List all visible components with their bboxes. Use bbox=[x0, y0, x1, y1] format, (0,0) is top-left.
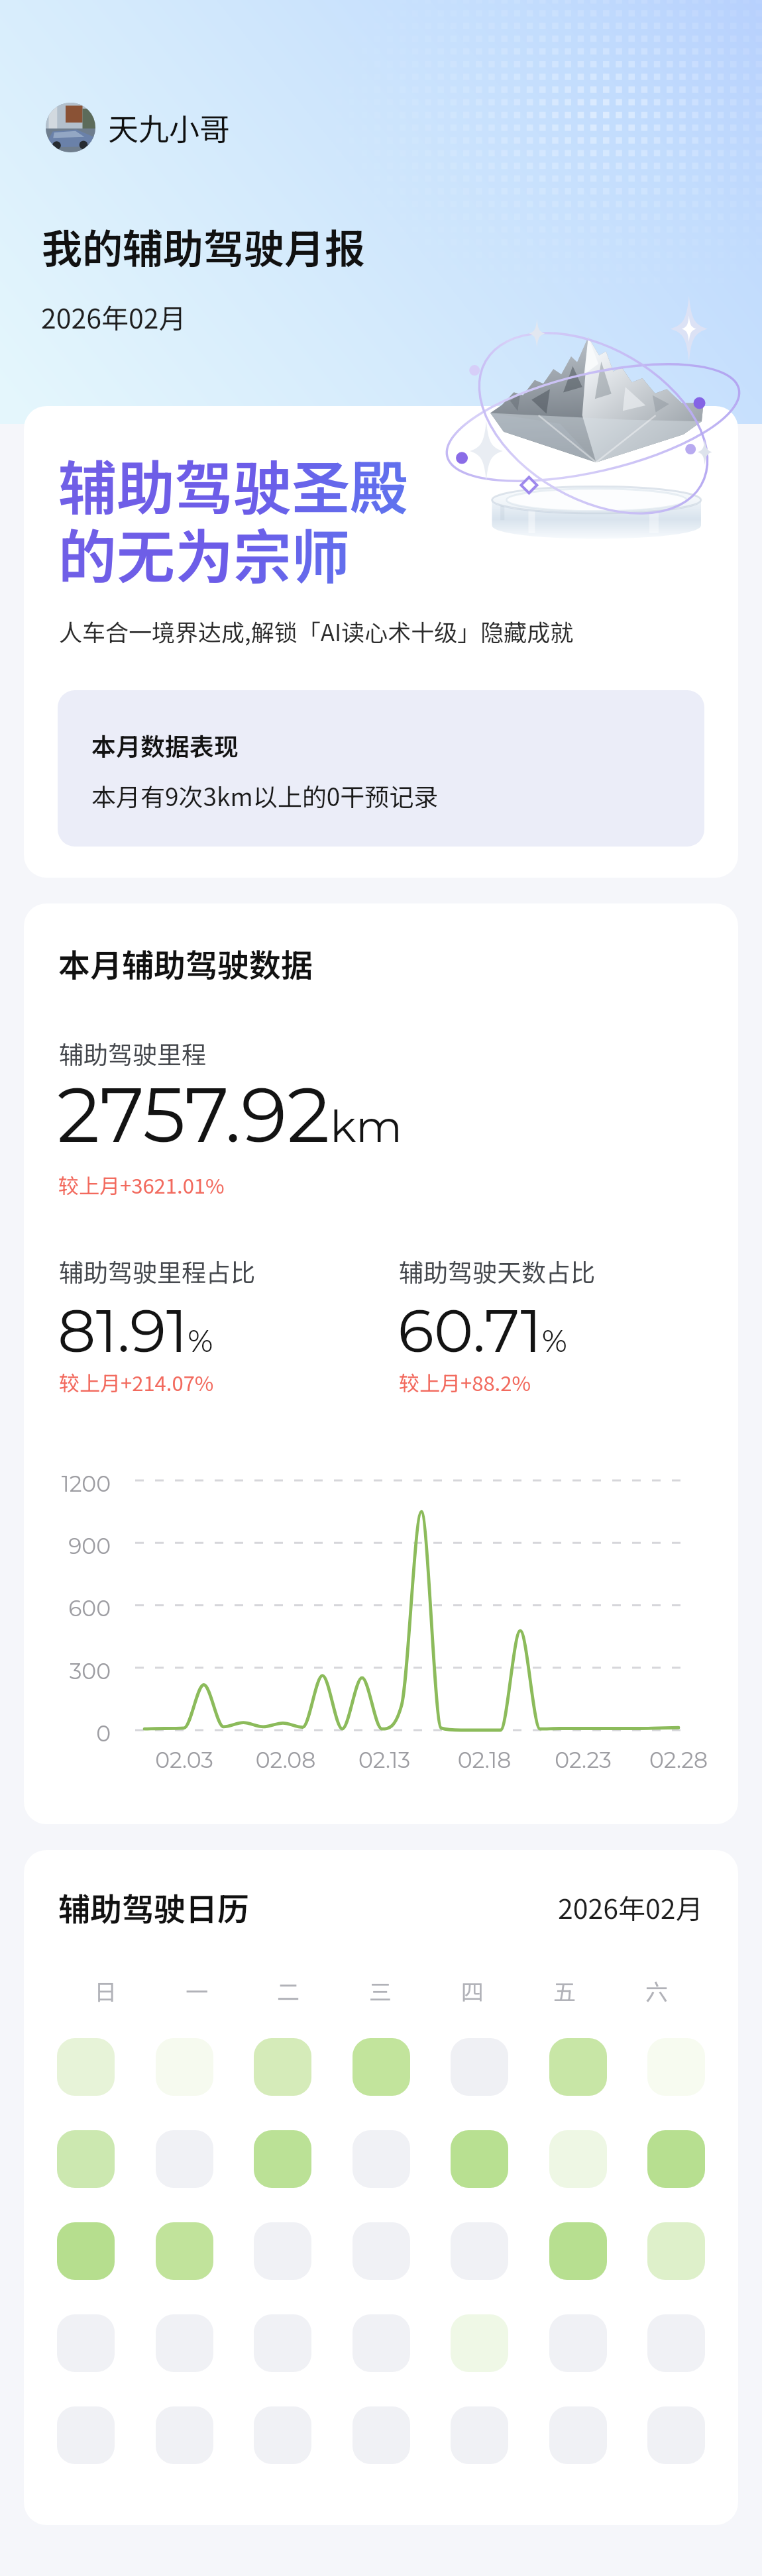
staticText: 辅助驾驶圣殿 的无为宗师 bbox=[58, 442, 409, 595]
button[interactable] bbox=[647, 2038, 705, 2096]
staticText: 本月有9次3km以上的0干预记录 bbox=[91, 778, 439, 813]
button[interactable] bbox=[549, 2130, 607, 2188]
staticText: 五 bbox=[553, 1975, 576, 2007]
staticText: 人车合一境界达成,解锁「AI读心术十级」隐藏成就 bbox=[59, 614, 574, 648]
staticText: 辅助驾驶里程占比 bbox=[59, 1253, 255, 1289]
button[interactable] bbox=[549, 2222, 607, 2280]
staticText: 四 bbox=[461, 1975, 484, 2007]
staticText: 我的辅助驾驶月报 bbox=[42, 217, 366, 275]
button[interactable] bbox=[156, 2038, 213, 2096]
staticText: 02.03 bbox=[131, 1747, 237, 1773]
staticText: 02.13 bbox=[331, 1747, 437, 1773]
staticText: 81.91% bbox=[58, 1294, 213, 1367]
staticText: 600 bbox=[30, 1595, 111, 1622]
staticText: 较上月+214.07% bbox=[59, 1367, 214, 1397]
staticText: 02.28 bbox=[626, 1747, 732, 1773]
staticText: 02.18 bbox=[431, 1747, 537, 1773]
staticText: 较上月+88.2% bbox=[399, 1367, 531, 1397]
staticText: 六 bbox=[645, 1975, 668, 2007]
button[interactable] bbox=[254, 2406, 311, 2464]
staticText: 02.08 bbox=[233, 1747, 339, 1773]
staticText: 较上月+3621.01% bbox=[58, 1170, 225, 1200]
button[interactable] bbox=[451, 2406, 508, 2464]
staticText: 天九小哥 bbox=[108, 105, 230, 150]
button[interactable] bbox=[353, 2038, 410, 2096]
staticText: 0 bbox=[30, 1720, 111, 1747]
button[interactable] bbox=[451, 2222, 508, 2280]
button[interactable] bbox=[647, 2222, 705, 2280]
button[interactable] bbox=[353, 2130, 410, 2188]
button[interactable] bbox=[254, 2130, 311, 2188]
staticText: 三 bbox=[369, 1975, 392, 2007]
staticText: 辅助驾驶天数占比 bbox=[399, 1253, 595, 1289]
button[interactable] bbox=[647, 2130, 705, 2188]
button[interactable] bbox=[647, 2314, 705, 2372]
staticText: 本月数据表现 bbox=[91, 727, 239, 763]
button[interactable] bbox=[254, 2222, 311, 2280]
staticText: 60.71% bbox=[398, 1294, 567, 1367]
staticText: 2026年02月 bbox=[41, 297, 186, 336]
button[interactable] bbox=[57, 2130, 115, 2188]
button[interactable] bbox=[156, 2314, 213, 2372]
button[interactable] bbox=[156, 2406, 213, 2464]
button[interactable] bbox=[549, 2038, 607, 2096]
button[interactable] bbox=[549, 2314, 607, 2372]
button[interactable] bbox=[156, 2130, 213, 2188]
other: Profile photo bbox=[46, 103, 95, 152]
staticText: 2757.92km bbox=[57, 1069, 402, 1161]
button[interactable] bbox=[353, 2222, 410, 2280]
staticText: 1200 bbox=[30, 1470, 111, 1497]
staticText: 900 bbox=[30, 1533, 111, 1559]
button[interactable] bbox=[549, 2406, 607, 2464]
staticText: 一 bbox=[186, 1975, 208, 2007]
staticText: 本月辅助驾驶数据 bbox=[58, 940, 313, 986]
staticText: 二 bbox=[277, 1975, 299, 2007]
button[interactable] bbox=[353, 2314, 410, 2372]
staticText: 辅助驾驶日历 bbox=[58, 1884, 250, 1930]
button[interactable] bbox=[451, 2130, 508, 2188]
staticText: 2026年02月 bbox=[558, 1887, 703, 1926]
button[interactable] bbox=[156, 2222, 213, 2280]
button[interactable] bbox=[647, 2406, 705, 2464]
button[interactable] bbox=[254, 2314, 311, 2372]
staticText: 日 bbox=[94, 1975, 117, 2007]
button[interactable] bbox=[57, 2314, 115, 2372]
button[interactable] bbox=[57, 2222, 115, 2280]
button[interactable] bbox=[57, 2406, 115, 2464]
button[interactable] bbox=[57, 2038, 115, 2096]
button[interactable] bbox=[451, 2314, 508, 2372]
staticText: 辅助驾驶里程 bbox=[59, 1035, 206, 1071]
button[interactable] bbox=[451, 2038, 508, 2096]
staticText: 300 bbox=[30, 1658, 111, 1684]
button[interactable] bbox=[353, 2406, 410, 2464]
button[interactable] bbox=[254, 2038, 311, 2096]
button[interactable]: Profile photo bbox=[46, 103, 230, 152]
staticText: 02.23 bbox=[530, 1747, 636, 1773]
